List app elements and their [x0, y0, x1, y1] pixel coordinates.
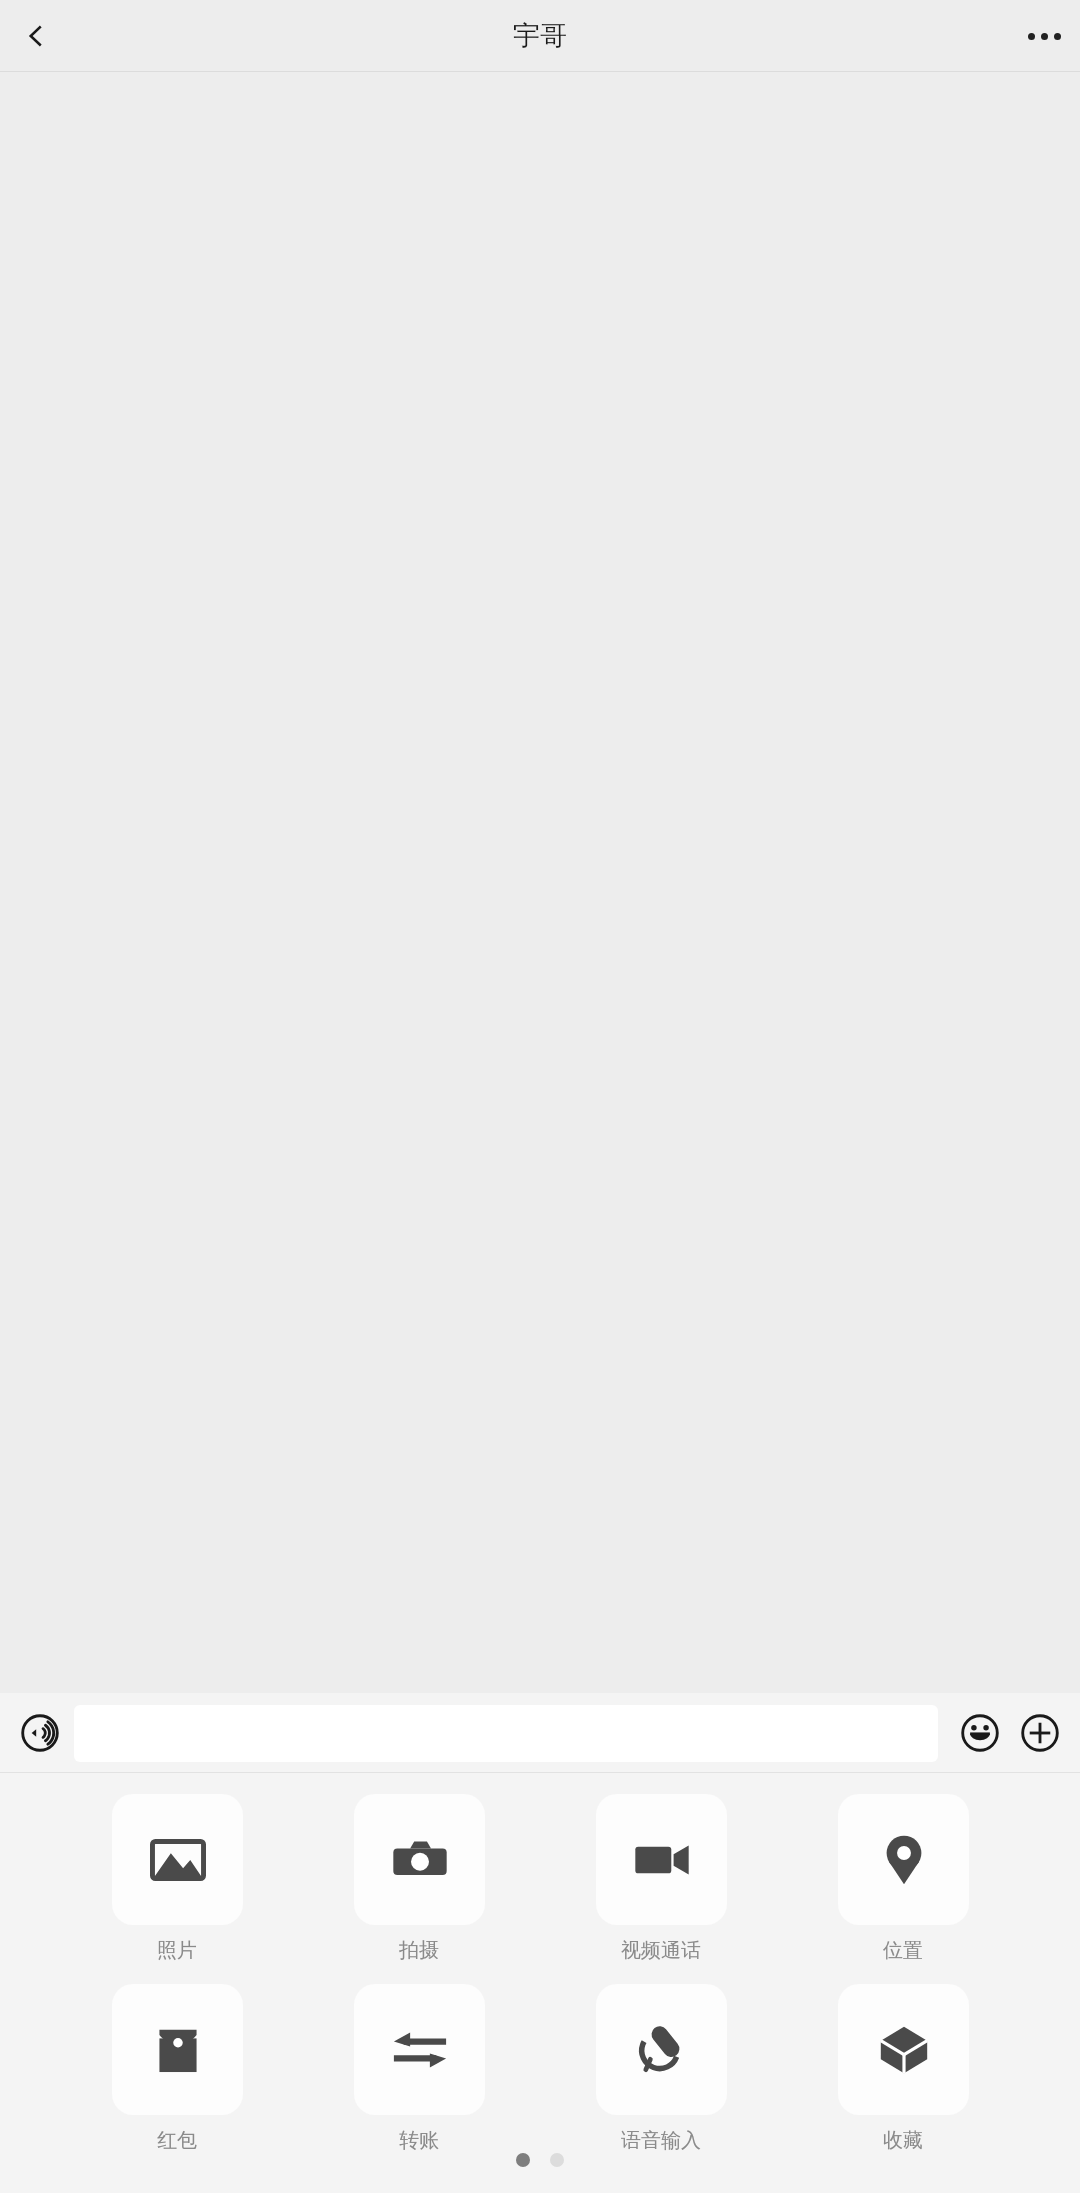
button[interactable]: More options: [1008, 0, 1080, 72]
staticText: 收藏: [883, 2128, 923, 2153]
button[interactable]: 拍摄: [344, 1794, 494, 1963]
button[interactable]: 语音输入: [586, 1984, 736, 2153]
button[interactable]: Emoji: [952, 1705, 1008, 1761]
button[interactable]: 红包: [102, 1984, 252, 2153]
staticText: 位置: [883, 1938, 923, 1963]
button[interactable]: Back: [0, 0, 72, 72]
button[interactable]: Voice message: [12, 1705, 68, 1761]
staticText: 红包: [157, 2128, 197, 2153]
staticText: 视频通话: [621, 1938, 701, 1963]
button[interactable]: 视频通话: [586, 1794, 736, 1963]
staticText: 拍摄: [399, 1938, 439, 1963]
button[interactable]: 收藏: [828, 1984, 978, 2153]
button[interactable]: 转账: [344, 1984, 494, 2153]
staticText: 转账: [399, 2128, 439, 2153]
staticText: 宇哥: [513, 19, 567, 53]
staticText: 语音输入: [621, 2128, 701, 2153]
button[interactable]: More functions: [1012, 1705, 1068, 1761]
button[interactable]: 照片: [102, 1794, 252, 1963]
staticText: 照片: [157, 1938, 197, 1963]
button[interactable]: 位置: [828, 1794, 978, 1963]
